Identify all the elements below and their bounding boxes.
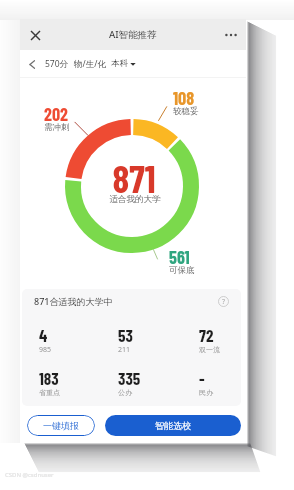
staticText: 省重点	[39, 388, 60, 397]
button[interactable]: More options	[220, 24, 242, 46]
staticText: 335	[118, 368, 141, 388]
button[interactable]: 智能选校	[105, 415, 241, 436]
staticText: 一键填报	[43, 420, 79, 431]
staticText: 211	[118, 345, 131, 355]
staticText: 570分	[45, 58, 69, 70]
staticText: 适合我的大学	[35, 194, 235, 205]
staticText: 4	[39, 325, 48, 345]
staticText: 公办	[118, 388, 132, 397]
button[interactable]: 一键填报	[27, 415, 95, 436]
button[interactable]: Help	[218, 296, 229, 307]
staticText: AI智能推荐	[109, 28, 157, 41]
staticText: 需冲刺	[44, 122, 70, 133]
staticText: 民办	[199, 388, 213, 397]
staticText: -	[199, 368, 205, 388]
staticText: 871	[34, 155, 234, 201]
button[interactable]: 本科	[111, 58, 136, 69]
button[interactable]: Close	[24, 24, 46, 46]
staticText: 物/生/化	[74, 58, 106, 70]
button[interactable]: Back	[24, 56, 40, 72]
staticText: 本科	[111, 58, 128, 69]
staticText: 561	[169, 246, 190, 268]
staticText: 72	[199, 325, 214, 345]
staticText: 108	[173, 87, 195, 109]
staticText: CSDN @csdnuser	[5, 471, 54, 479]
staticText: ?	[222, 297, 226, 307]
staticText: 双一流	[199, 345, 220, 354]
staticText: 202	[44, 103, 68, 125]
staticText: 较稳妥	[173, 106, 199, 117]
staticText: 可保底	[169, 265, 195, 276]
staticText: 53	[118, 325, 133, 345]
staticText: 智能选校	[155, 420, 191, 431]
staticText: 183	[39, 368, 59, 388]
staticText: 985	[39, 345, 52, 355]
staticText: 871合适我的大学中	[34, 295, 113, 307]
